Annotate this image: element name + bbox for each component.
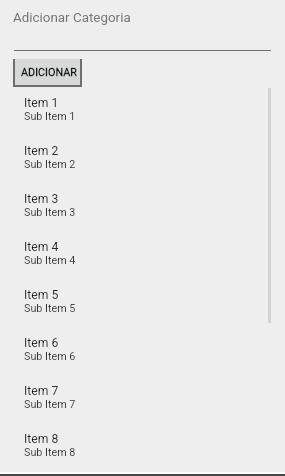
staticText: Sub Item 3 — [24, 206, 76, 219]
staticText: Item 7 — [24, 384, 59, 398]
staticText: Item 3 — [24, 192, 59, 206]
staticText: Sub Item 7 — [24, 398, 76, 411]
staticText: Sub Item 4 — [24, 254, 76, 267]
button[interactable]: Item 5 — [0, 280, 285, 328]
button[interactable]: Item 7 — [0, 376, 285, 424]
staticText: Sub Item 2 — [24, 158, 76, 171]
staticText: Sub Item 6 — [24, 350, 76, 363]
staticText: Sub Item 8 — [24, 446, 76, 459]
staticText: Adicionar Categoria — [13, 10, 131, 26]
staticText: Item 5 — [24, 288, 59, 302]
button[interactable]: Item 6 — [0, 328, 285, 376]
staticText: Sub Item 5 — [24, 302, 76, 315]
staticText: Item 4 — [24, 240, 59, 254]
button[interactable]: Item 8 — [0, 424, 285, 472]
staticText: ADICIONAR — [21, 66, 77, 79]
staticText: Sub Item 1 — [24, 110, 76, 123]
staticText: Item 8 — [24, 432, 59, 446]
staticText: Item 1 — [24, 96, 59, 110]
staticText: Item 2 — [24, 144, 59, 158]
staticText: Item 6 — [24, 336, 59, 350]
button[interactable]: ADICIONAR — [15, 59, 80, 85]
button[interactable]: Item 1 — [0, 88, 285, 136]
button[interactable]: Adicionar Categoria — [0, 0, 285, 51]
button[interactable]: Item 3 — [0, 184, 285, 232]
button[interactable]: Item 4 — [0, 232, 285, 280]
button[interactable]: Item 2 — [0, 136, 285, 184]
